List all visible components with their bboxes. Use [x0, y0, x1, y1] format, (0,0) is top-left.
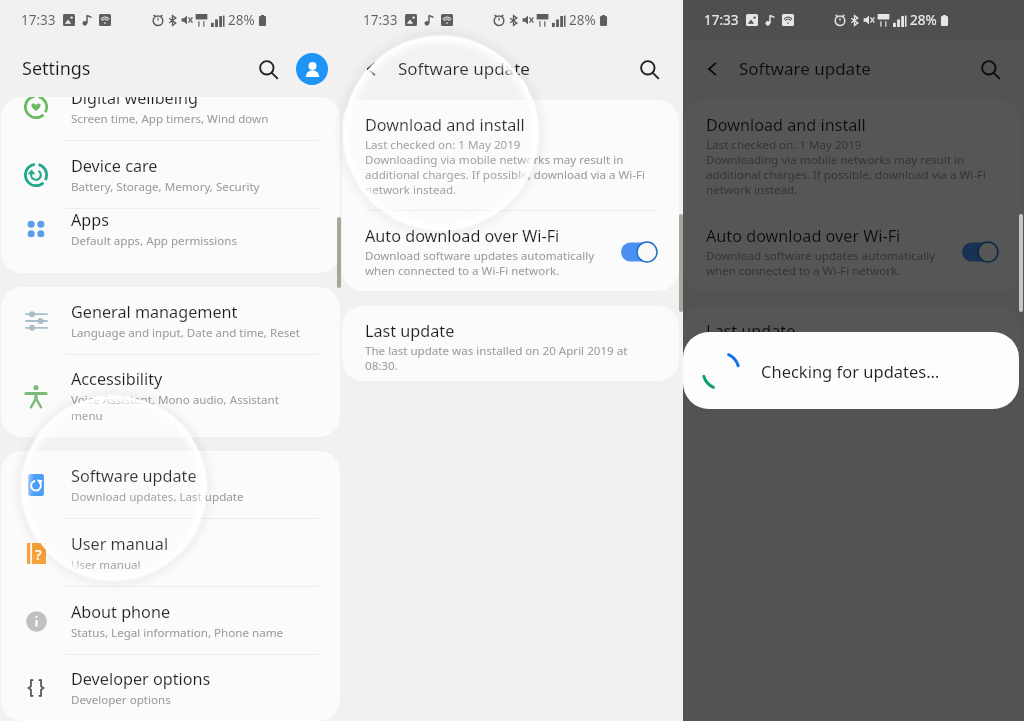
button[interactable]: Search — [629, 49, 669, 89]
staticText: Developer options — [71, 692, 171, 708]
button[interactable]: Digital wellbeing — [1, 97, 340, 140]
button[interactable]: Auto download toggle — [621, 241, 657, 263]
staticText: Last checked on: 1 May 2019 Downloading … — [706, 138, 987, 198]
staticText: 28% — [569, 11, 596, 29]
staticText: Software update — [739, 57, 871, 80]
staticText: Status, Legal information, Phone name — [71, 625, 284, 641]
staticText: Last checked on: 1 May 2019 Downloading … — [365, 138, 646, 198]
staticText: Software update — [71, 465, 197, 487]
button[interactable]: Last update — [342, 306, 679, 381]
staticText: Auto download over Wi-Fi — [365, 225, 560, 247]
button[interactable]: Last update — [683, 306, 1020, 381]
button[interactable]: Software update — [1, 451, 340, 518]
button[interactable]: Download and install — [342, 100, 679, 210]
button[interactable]: Search — [248, 49, 288, 89]
button[interactable]: Download and install — [683, 100, 1020, 210]
staticText: ? — [35, 544, 42, 564]
button[interactable]: Accessibility — [1, 355, 340, 437]
button[interactable]: General management — [1, 287, 340, 354]
staticText: 17:33 — [21, 11, 56, 29]
staticText: menu — [71, 408, 103, 424]
staticText: Voice Assistant, Mono audio, Assistant — [71, 392, 279, 408]
staticText: Download and install — [706, 114, 866, 136]
staticText: The last update was installed on 20 Apri… — [706, 344, 969, 374]
staticText: Device care — [71, 155, 158, 177]
staticText: Software update — [398, 57, 530, 80]
button[interactable]: About phone — [1, 587, 340, 654]
staticText: Download software updates automatically … — [706, 249, 936, 279]
button[interactable]: Developer options — [1, 655, 340, 721]
button[interactable]: Apps — [1, 209, 340, 249]
staticText: Checking for updates… — [761, 360, 940, 382]
staticText: Accessibility — [71, 368, 163, 390]
staticText: User manual — [71, 557, 141, 573]
button[interactable]: Back — [695, 51, 731, 87]
button[interactable]: Device care — [1, 141, 340, 208]
staticText: Auto download over Wi-Fi — [706, 225, 901, 247]
staticText: 28% — [228, 11, 255, 29]
staticText: Settings — [22, 56, 91, 81]
button[interactable]: Search — [970, 49, 1010, 89]
button[interactable]: Back — [354, 51, 390, 87]
staticText: 17:33 — [363, 11, 398, 29]
button[interactable]: Checking for updates… — [683, 332, 1019, 409]
staticText: 17:33 — [704, 11, 739, 29]
staticText: 17:33 — [704, 11, 739, 29]
staticText: 28% — [910, 11, 937, 29]
staticText: Screen time, App timers, Wind down — [71, 111, 269, 127]
staticText: 28% — [910, 11, 937, 29]
button[interactable]: Auto download over Wi-Fi — [683, 211, 1020, 291]
staticText: Digital wellbeing — [71, 97, 198, 109]
staticText: Last update — [365, 320, 455, 342]
staticText: Developer options — [71, 668, 211, 690]
staticText: Download software updates automatically … — [365, 249, 595, 279]
staticText: Last update — [706, 320, 796, 342]
staticText: Download updates, Last update — [71, 489, 244, 505]
staticText: General management — [71, 301, 238, 323]
staticText: Language and input, Date and time, Reset — [71, 325, 301, 341]
staticText: User manual — [71, 533, 169, 555]
button[interactable]: Auto download toggle — [962, 241, 998, 263]
staticText: Download and install — [365, 114, 525, 136]
staticText: Apps — [71, 209, 110, 231]
button[interactable]: ? — [1, 519, 340, 586]
staticText: About phone — [71, 601, 171, 623]
staticText: Default apps, App permissions — [71, 233, 238, 249]
staticText: Battery, Storage, Memory, Security — [71, 179, 260, 195]
staticText: The last update was installed on 20 Apri… — [365, 344, 628, 374]
button[interactable]: Account — [296, 53, 328, 85]
button[interactable]: Auto download over Wi-Fi — [342, 211, 679, 291]
